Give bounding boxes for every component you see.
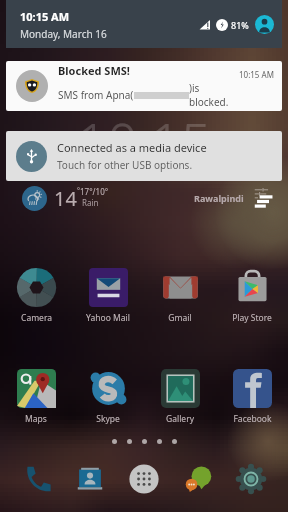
staticText: Play Store <box>232 312 272 324</box>
staticText: Blocked SMS! <box>58 63 130 78</box>
staticText: Facebook <box>233 413 272 425</box>
staticText: Camera <box>21 312 52 324</box>
button[interactable]: Skype <box>72 369 144 425</box>
staticText: Rain <box>82 197 99 208</box>
staticText: Monday, March 16 <box>20 27 107 41</box>
staticText: Gallery <box>166 413 194 425</box>
button[interactable]: Camera <box>0 268 72 324</box>
button[interactable]: Yahoo Mail <box>72 268 144 324</box>
staticText: 10:15 AM <box>239 69 274 80</box>
button[interactable]: Phone <box>20 462 54 496</box>
button[interactable]: News <box>252 187 275 210</box>
staticText: Gmail <box>168 312 192 324</box>
staticText: 10:15 <box>77 105 211 177</box>
button[interactable]: Gmail <box>144 268 216 324</box>
staticText: Maps <box>25 413 47 425</box>
button[interactable]: User profile <box>255 15 274 34</box>
staticText: 17°/10° <box>80 186 109 197</box>
staticText: ° <box>77 186 80 196</box>
staticText: Touch for other USB options. <box>57 158 193 172</box>
button[interactable]: Play Store <box>216 268 288 324</box>
staticText: SMS from Apna( <box>58 88 134 102</box>
staticText: 81% <box>231 19 249 31</box>
button[interactable]: Connected as a media device <box>6 131 282 181</box>
button[interactable]: Maps <box>0 369 72 425</box>
staticText: 10:15 AM <box>20 9 70 24</box>
button[interactable]: All apps <box>127 462 161 496</box>
staticText: )is blocked. <box>189 81 239 109</box>
button[interactable]: Settings <box>234 462 268 496</box>
staticText: 14 <box>54 185 77 212</box>
button[interactable]: Contacts <box>73 462 107 496</box>
staticText: Yahoo Mail <box>86 312 130 324</box>
button[interactable]: Facebook <box>216 369 288 425</box>
button[interactable]: Gallery <box>144 369 216 425</box>
button[interactable]: Messaging <box>181 462 215 496</box>
staticText: Skype <box>96 413 120 425</box>
button[interactable]: Blocked SMS! <box>6 61 282 111</box>
staticText: Rawalpindi <box>194 192 244 204</box>
staticText: Connected as a media device <box>57 140 207 155</box>
button[interactable]: Weather <box>22 186 47 211</box>
